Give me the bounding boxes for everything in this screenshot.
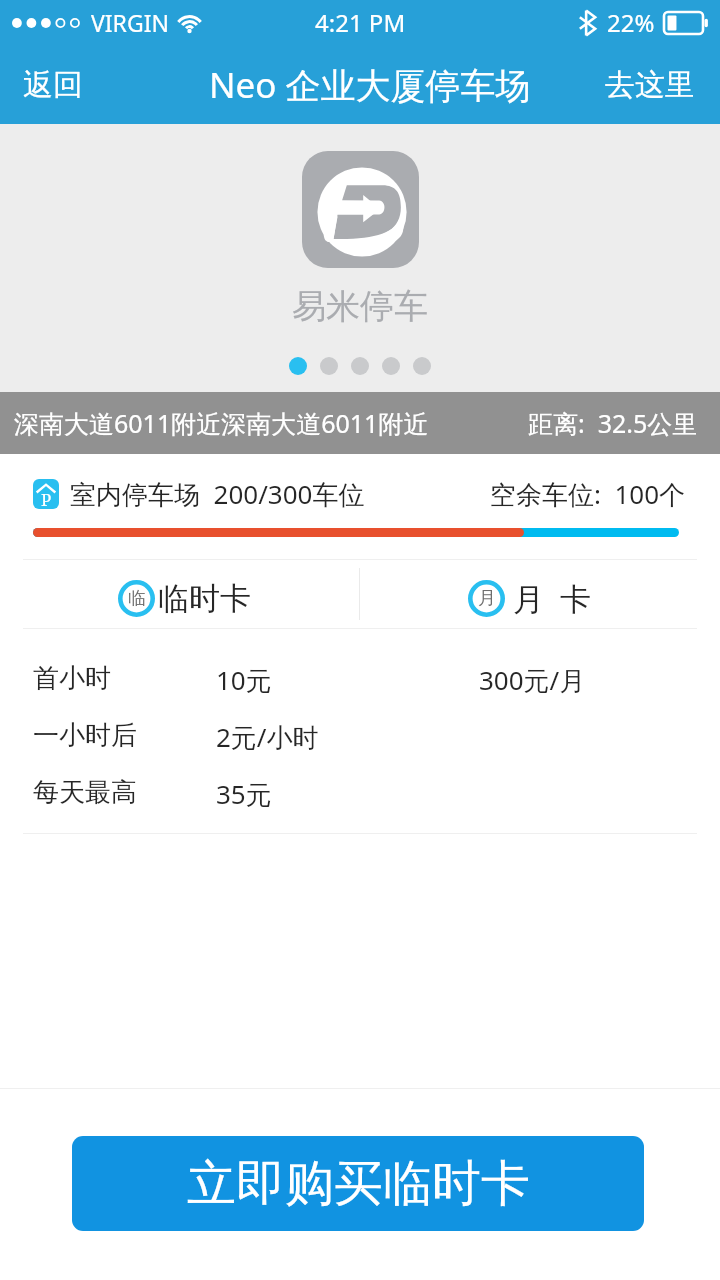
staticText: 22%	[607, 6, 655, 39]
staticText: 易米停车	[292, 285, 428, 328]
staticText: 月 卡	[513, 577, 592, 619]
staticText: P	[41, 488, 52, 509]
staticText: VIRGIN	[91, 7, 169, 38]
staticText: 4:21 PM	[315, 6, 406, 39]
staticText: 首小时	[33, 662, 111, 695]
button[interactable]: 返回	[0, 50, 105, 120]
staticText: 一小时后	[33, 719, 137, 752]
button[interactable]: 临	[0, 560, 359, 628]
staticText: 返回	[23, 66, 83, 104]
staticText: 去这里	[605, 66, 695, 104]
staticText: 每天最高	[33, 776, 137, 809]
staticText: 临时卡	[158, 579, 251, 618]
staticText: 300元/月	[479, 662, 586, 698]
staticText: 2元/小时	[216, 719, 319, 755]
button[interactable]: 立即购买临时卡	[72, 1136, 644, 1231]
staticText: 深南大道6011附近深南大道6011附近	[14, 406, 429, 440]
staticText: 立即购买临时卡	[187, 1153, 530, 1215]
staticText: 35元	[216, 776, 272, 812]
staticText: 空余车位: 100个	[490, 476, 686, 512]
staticText: 临	[128, 587, 146, 610]
button[interactable]: 去这里	[583, 50, 720, 120]
staticText: 室内停车场 200/300车位	[70, 476, 365, 512]
staticText: 月	[478, 587, 496, 610]
staticText: Neo 企业大厦停车场	[209, 61, 531, 109]
staticText: 距离: 32.5公里	[528, 406, 698, 440]
button[interactable]: 月	[360, 560, 720, 628]
staticText: 10元	[216, 662, 272, 698]
